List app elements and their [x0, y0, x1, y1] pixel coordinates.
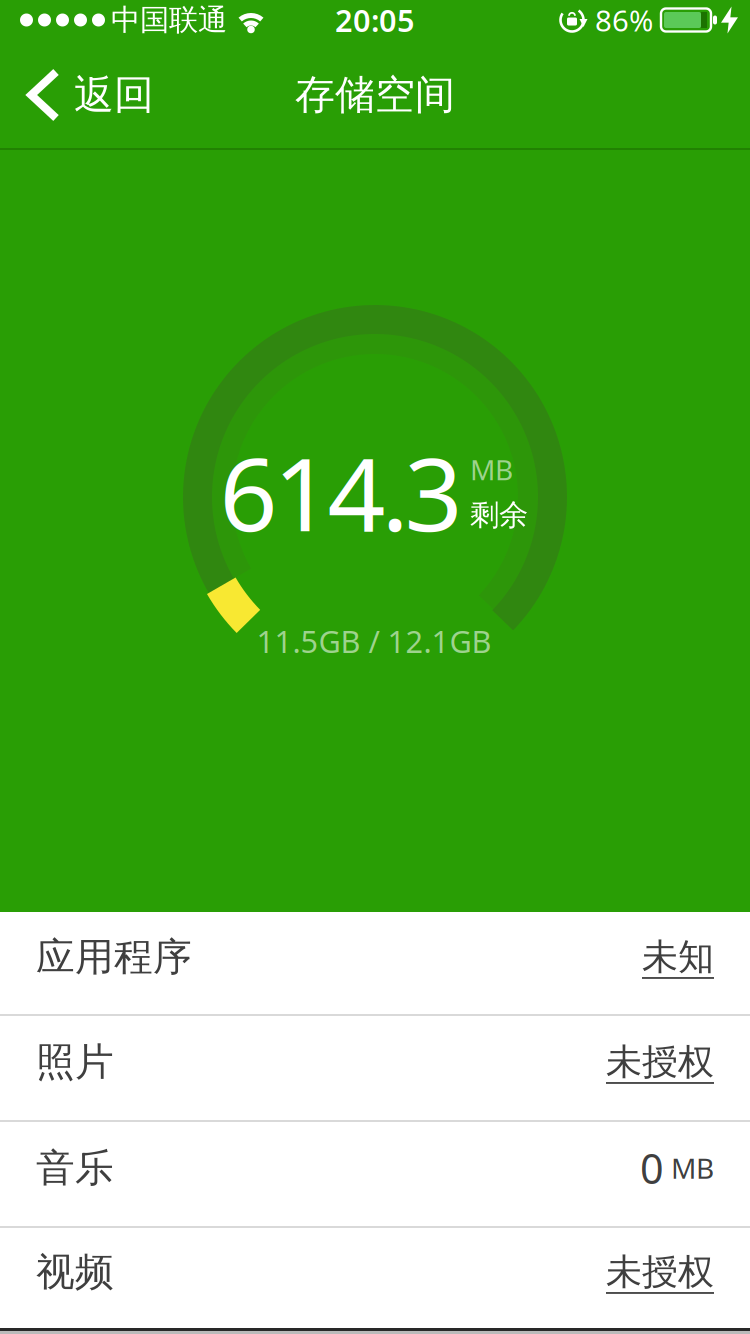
button[interactable]: 视频 [0, 1228, 750, 1328]
button[interactable]: 返回 [0, 41, 154, 149]
button[interactable]: 照片 [0, 1016, 750, 1120]
staticText: 应用程序 [36, 933, 192, 981]
staticText: 614.3 [219, 425, 462, 559]
staticText: 11.5GB / 12.1GB [256, 621, 491, 661]
staticText: 中国联通 [111, 2, 227, 38]
staticText: 86% [595, 0, 653, 39]
staticText: 未知 [642, 935, 714, 979]
staticText: 未授权 [606, 1250, 714, 1294]
button[interactable]: 应用程序 [0, 912, 750, 1014]
staticText: 视频 [36, 1248, 114, 1296]
staticText: MB [470, 451, 513, 488]
staticText: 未授权 [606, 1040, 714, 1084]
staticText: 存储空间 [295, 70, 455, 119]
staticText: 返回 [74, 70, 154, 119]
staticText: 音乐 [36, 1144, 114, 1192]
staticText: 照片 [36, 1038, 114, 1086]
button[interactable]: 音乐 [0, 1122, 750, 1226]
staticText: 剩余 [470, 497, 528, 533]
staticText: 0 [640, 1141, 664, 1195]
staticText: 20:05 [335, 0, 415, 40]
staticText: MB [671, 1149, 714, 1187]
